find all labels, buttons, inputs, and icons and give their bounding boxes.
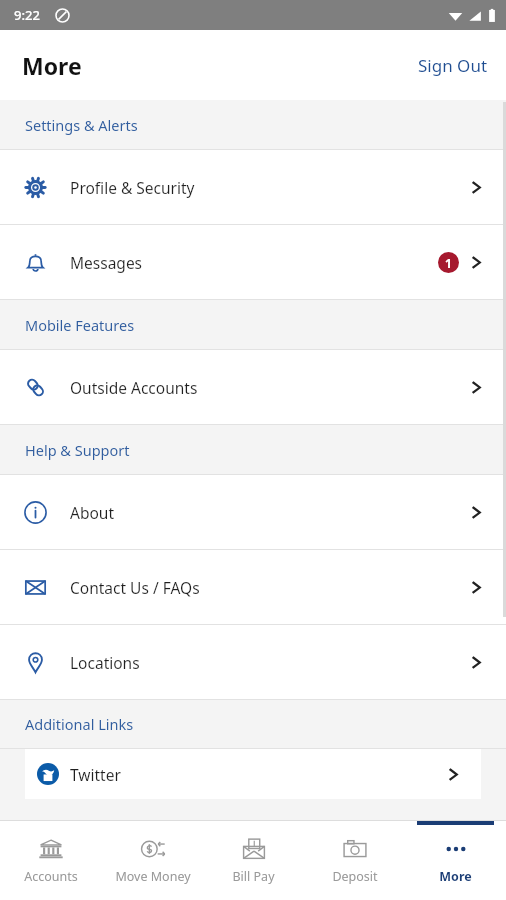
staticText: Help & Support bbox=[25, 440, 130, 460]
button[interactable]: Accounts bbox=[0, 821, 102, 900]
staticText: Settings & Alerts bbox=[25, 115, 138, 135]
button[interactable]: Outside Accounts bbox=[0, 350, 506, 424]
staticText: Mobile Features bbox=[25, 315, 135, 335]
button[interactable]: Contact Us / FAQs bbox=[0, 550, 506, 624]
staticText: Messages bbox=[70, 252, 438, 273]
staticText: Additional Links bbox=[25, 714, 134, 734]
staticText: Deposit bbox=[332, 868, 378, 885]
staticText: Bill Pay bbox=[232, 868, 275, 885]
button[interactable]: Deposit bbox=[304, 821, 405, 900]
staticText: 1 bbox=[445, 255, 452, 271]
staticText: More bbox=[22, 50, 82, 81]
staticText: Accounts bbox=[24, 868, 78, 885]
button[interactable]: Twitter bbox=[25, 749, 481, 799]
staticText: Move Money bbox=[115, 868, 191, 885]
button[interactable]: Move Money bbox=[102, 821, 203, 900]
staticText: 9:22 bbox=[14, 6, 40, 24]
button[interactable]: Profile & Security bbox=[0, 150, 506, 224]
staticText: Contact Us / FAQs bbox=[70, 577, 469, 598]
button[interactable]: More bbox=[405, 821, 506, 900]
button[interactable]: Messages bbox=[0, 225, 506, 299]
staticText: More bbox=[439, 868, 472, 885]
button[interactable]: Locations bbox=[0, 625, 506, 699]
staticText: Sign Out bbox=[418, 54, 488, 77]
staticText: Locations bbox=[70, 652, 469, 673]
button[interactable]: Sign Out bbox=[400, 44, 506, 87]
staticText: Profile & Security bbox=[70, 177, 469, 198]
staticText: About bbox=[70, 502, 469, 523]
button[interactable]: About bbox=[0, 475, 506, 549]
button[interactable]: Bill Pay bbox=[203, 821, 304, 900]
staticText: Twitter bbox=[70, 764, 446, 785]
staticText: Outside Accounts bbox=[70, 377, 469, 398]
